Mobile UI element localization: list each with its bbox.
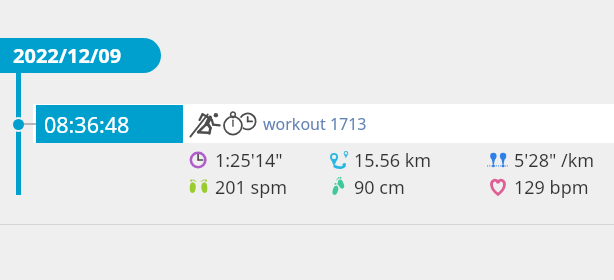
staticText: workout 1713 bbox=[263, 113, 367, 135]
staticText: 129 bpm bbox=[514, 175, 589, 200]
staticText: 5'28" /km bbox=[514, 148, 595, 173]
button[interactable]: 2022/12/09 bbox=[0, 38, 161, 73]
button[interactable]: 08:36:48 bbox=[36, 105, 183, 143]
button[interactable]: workout 1713 bbox=[189, 105, 367, 143]
staticText: 15.56 km bbox=[354, 148, 432, 173]
staticText: 90 cm bbox=[354, 175, 405, 200]
staticText: 2022/12/09 bbox=[13, 42, 122, 69]
staticText: 201 spm bbox=[215, 175, 288, 200]
staticText: 1:25'14" bbox=[215, 148, 283, 173]
staticText: 08:36:48 bbox=[44, 110, 130, 139]
